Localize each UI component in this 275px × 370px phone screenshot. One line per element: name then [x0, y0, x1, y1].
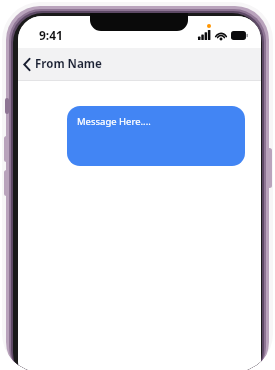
other: Power: [267, 148, 272, 188]
staticText: Message Here....: [77, 115, 151, 128]
button[interactable]: Message Here....: [67, 106, 245, 166]
staticText: From Name: [35, 56, 102, 72]
staticText: 9:41: [39, 27, 63, 43]
other: Ring silent switch: [5, 98, 9, 114]
other: Volume up: [4, 136, 9, 162]
other: Volume down: [4, 170, 9, 196]
button[interactable]: From Name: [18, 52, 110, 76]
